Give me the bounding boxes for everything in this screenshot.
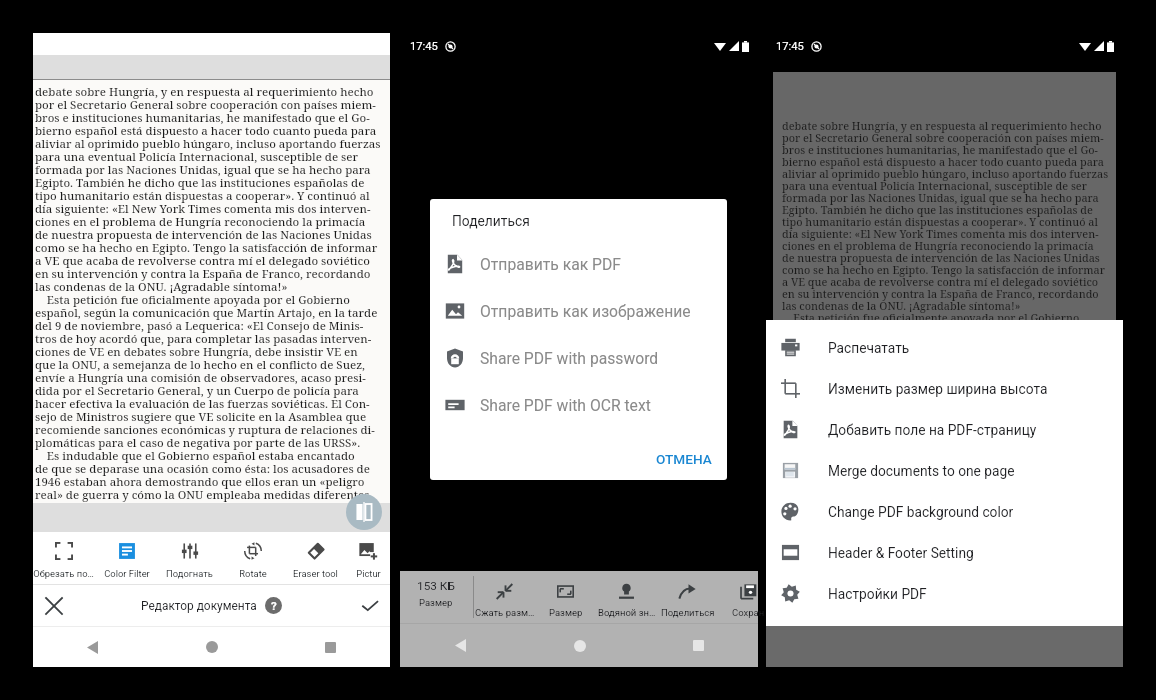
- staticText: ?: [271, 599, 277, 612]
- button[interactable]: Изменить размер ширина высота: [766, 368, 1123, 409]
- button[interactable]: 153 КБ: [406, 571, 466, 623]
- button[interactable]: Compare pages: [346, 494, 382, 530]
- staticText: de nuestra propuesta de intervención de …: [782, 251, 1116, 266]
- staticText: Настройки PDF: [828, 586, 927, 602]
- button[interactable]: Share PDF with password: [430, 334, 727, 381]
- button[interactable]: Rotate: [221, 532, 284, 584]
- staticText: Esta petición fue oficialmente apoyada p…: [782, 311, 1116, 326]
- staticText: como se ha hecho en Egipto. Tengo la sat…: [35, 240, 390, 256]
- staticText: Esta petición fue oficialmente apoyada p…: [35, 292, 390, 308]
- staticText: aliviar al oprimido pueblo húngaro, incl…: [782, 167, 1116, 182]
- staticText: tipo humanitario están dispuestas a coop…: [782, 215, 1116, 230]
- button[interactable]: Размер: [535, 571, 596, 623]
- staticText: debate sobre Hungría, y en respuesta al …: [782, 119, 1116, 134]
- staticText: de que se deparase una ocasión como ésta…: [35, 461, 390, 477]
- staticText: Es indudable que el Gobierno español est…: [35, 448, 390, 464]
- staticText: Отправить как изображение: [480, 302, 691, 320]
- staticText: para una eventual Policía Internacional,…: [782, 179, 1116, 194]
- staticText: real» de guerra y cómo la ONU empleaba m…: [35, 487, 390, 503]
- button[interactable]: Pictur: [347, 532, 389, 584]
- staticText: Изменить размер ширина высота: [828, 381, 1048, 397]
- button[interactable]: Done: [349, 585, 390, 626]
- staticText: Размер: [549, 607, 583, 618]
- button[interactable]: Отправить как изображение: [430, 287, 727, 334]
- staticText: que la ONU, a semejanza de lo hecho en e…: [35, 357, 390, 373]
- staticText: 17:45: [776, 40, 804, 53]
- staticText: Pictur: [356, 568, 381, 579]
- staticText: las condenas de la ONU. ¡Agradable sínto…: [35, 279, 390, 295]
- staticText: Сжать разм…: [475, 607, 535, 618]
- staticText: hacer efectiva la evaluación de las fuer…: [782, 407, 1116, 422]
- button[interactable]: Home: [520, 624, 639, 667]
- button[interactable]: Сохран: [718, 571, 779, 623]
- staticText: en su intervención y contra la España de…: [35, 266, 390, 282]
- staticText: bierno español está dispuesto a hacer to…: [782, 155, 1116, 170]
- staticText: por el Secretario General sobre cooperac…: [35, 97, 390, 113]
- button[interactable]: Распечатать: [766, 327, 1123, 368]
- staticText: en su intervención y contra la España de…: [782, 287, 1116, 302]
- staticText: ОТМЕНА: [656, 451, 712, 467]
- button[interactable]: Подогнать: [158, 532, 221, 584]
- button[interactable]: Recents: [639, 624, 758, 667]
- staticText: como se ha hecho en Egipto. Tengo la sat…: [782, 263, 1116, 278]
- staticText: envíe a Hungría una comisión de observad…: [35, 370, 390, 386]
- button[interactable]: Back: [33, 627, 152, 667]
- button[interactable]: Header & Footer Setting: [766, 532, 1123, 573]
- staticText: recomiende sanciones económicas y ruptur…: [782, 431, 1116, 446]
- staticText: aliviar al oprimido pueblo húngaro, incl…: [35, 136, 390, 152]
- staticText: que la ONU, a semejanza de lo hecho en e…: [782, 371, 1116, 386]
- staticText: bierno español está dispuesto a hacer to…: [35, 123, 390, 139]
- button[interactable]: Настройки PDF: [766, 573, 1123, 614]
- staticText: español, según la comunicación que Martí…: [35, 305, 390, 321]
- button[interactable]: Back: [400, 624, 520, 667]
- staticText: sejo de Ministros sugiere que VE solicit…: [782, 419, 1116, 434]
- staticText: Редактор документа: [141, 599, 257, 613]
- staticText: Поделиться: [661, 607, 715, 618]
- staticText: Rotate: [239, 568, 267, 579]
- staticText: tros de hoy acordó que, para completar l…: [35, 331, 390, 347]
- button[interactable]: Help: [265, 597, 282, 614]
- button[interactable]: Водяной зн…: [596, 571, 657, 623]
- staticText: dida por el Secretario General, y un Cue…: [35, 383, 390, 399]
- button[interactable]: Recents: [271, 627, 390, 667]
- button[interactable]: Обрезать по…: [32, 532, 95, 584]
- staticText: Egipto. También he dicho que las institu…: [35, 175, 390, 191]
- staticText: ciones en el problema de Hungría reconoc…: [35, 214, 390, 230]
- staticText: día siguiente: «El New York Times coment…: [35, 201, 390, 217]
- staticText: Es indudable que el Gobierno español est…: [782, 455, 1116, 470]
- staticText: de que se deparase una ocasión como ésta…: [782, 467, 1116, 482]
- button[interactable]: Сжать разм…: [474, 571, 535, 623]
- staticText: recomiende sanciones económicas y ruptur…: [35, 422, 390, 438]
- staticText: dida por el Secretario General, y un Cue…: [782, 395, 1116, 410]
- staticText: plomáticas para el caso de negativa por …: [35, 435, 390, 451]
- staticText: Добавить поле на PDF-страницу: [828, 422, 1037, 438]
- staticText: ciones en el problema de Hungría reconoc…: [782, 239, 1116, 254]
- button[interactable]: Отправить как PDF: [430, 240, 727, 287]
- staticText: Распечатать: [828, 340, 910, 356]
- button[interactable]: Home: [152, 627, 271, 667]
- button[interactable]: Добавить поле на PDF-страницу: [766, 409, 1123, 450]
- staticText: Header & Footer Setting: [828, 545, 974, 561]
- staticText: Color Filter: [104, 568, 150, 579]
- staticText: envíe a Hungría una comisión de observad…: [782, 383, 1116, 398]
- button[interactable]: Eraser tool: [284, 532, 347, 584]
- button[interactable]: Share PDF with OCR text: [430, 381, 727, 428]
- staticText: las condenas de la ONU. ¡Agradable sínto…: [782, 299, 1116, 314]
- staticText: ciones de VE en debates sobre Hungría, d…: [35, 344, 390, 360]
- staticText: a VE que acaba de revolverse contra mí e…: [782, 275, 1116, 290]
- staticText: bros e instituciones humanitarias, he ma…: [782, 143, 1116, 158]
- staticText: Merge documents to one page: [828, 463, 1015, 479]
- staticText: debate sobre Hungría, y en respuesta al …: [35, 84, 390, 100]
- button[interactable]: Поделиться: [657, 571, 718, 623]
- staticText: Поделиться: [452, 213, 530, 229]
- staticText: a VE que acaba de revolverse contra mí e…: [35, 253, 390, 269]
- button[interactable]: Close: [33, 585, 74, 626]
- staticText: Размер: [419, 597, 453, 608]
- button[interactable]: Merge documents to one page: [766, 450, 1123, 491]
- staticText: sejo de Ministros sugiere que VE solicit…: [35, 409, 390, 425]
- button[interactable]: Color Filter: [95, 532, 158, 584]
- button[interactable]: ОТМЕНА: [648, 443, 720, 475]
- button[interactable]: Change PDF background color: [766, 491, 1123, 532]
